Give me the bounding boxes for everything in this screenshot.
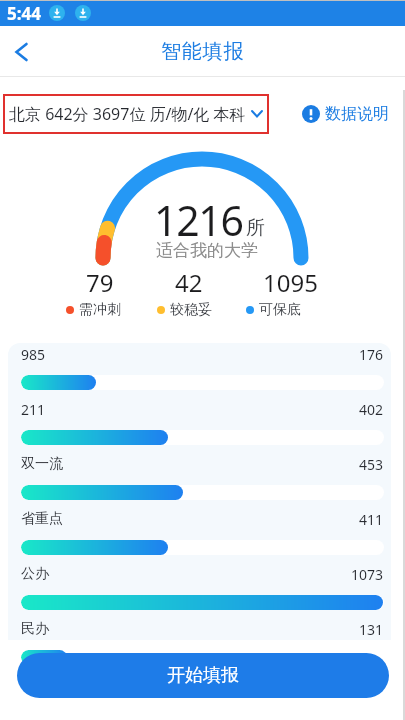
button[interactable]: 北京 642分 3697位 历/物/化 本科	[3, 94, 269, 134]
button[interactable]: 数据说明	[302, 104, 389, 124]
staticText: 省重点	[21, 510, 63, 528]
staticText: 453	[359, 455, 384, 473]
staticText: 所	[246, 216, 265, 240]
staticText: 985	[21, 345, 46, 363]
staticText: 1095	[263, 266, 318, 299]
button[interactable]: 开始填报	[17, 653, 389, 698]
staticText: 131	[359, 620, 384, 638]
staticText: 开始填报	[167, 664, 239, 687]
staticText: 智能填报	[161, 39, 245, 64]
button[interactable]	[0, 26, 44, 77]
staticText: 适合我的大学	[156, 240, 258, 261]
staticText: 5:44	[7, 2, 41, 25]
staticText: 北京 642分 3697位 历/物/化 本科	[9, 103, 246, 125]
staticText: 411	[359, 510, 384, 528]
staticText: 1216	[154, 192, 243, 248]
staticText: 民办	[21, 620, 49, 638]
staticText: 较稳妥	[170, 301, 212, 318]
staticText: 可保底	[259, 301, 301, 318]
staticText: 42	[175, 266, 203, 299]
staticText: 79	[86, 266, 114, 299]
staticText: 数据说明	[325, 104, 389, 124]
staticText: 402	[359, 400, 384, 418]
staticText: 需冲刺	[79, 301, 121, 318]
staticText: 176	[359, 345, 384, 363]
staticText: 1073	[351, 565, 384, 583]
staticText: 211	[21, 400, 46, 418]
staticText: 双一流	[21, 455, 63, 473]
staticText: 公办	[21, 565, 49, 583]
